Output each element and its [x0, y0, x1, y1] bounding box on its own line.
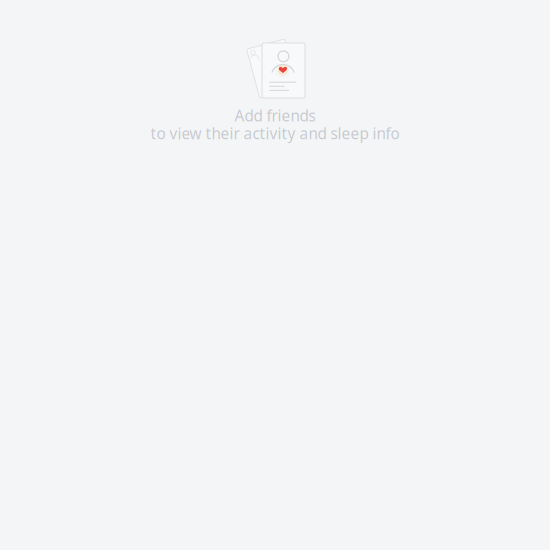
staticText: Add friends — [234, 105, 315, 126]
staticText: to view their activity and sleep info — [150, 123, 399, 144]
